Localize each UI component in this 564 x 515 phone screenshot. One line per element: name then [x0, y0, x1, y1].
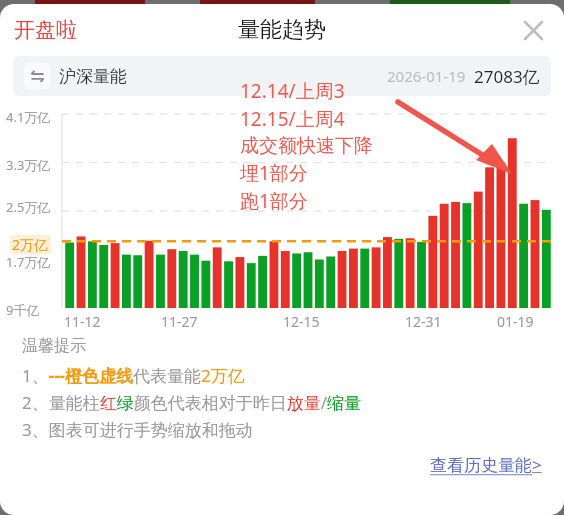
staticText: 11-27: [161, 312, 198, 331]
staticText: 2026-01-19: [387, 66, 466, 86]
staticText: 1、---橙色虚线代表量能2万亿: [22, 364, 245, 387]
staticText: 4.1万亿: [6, 108, 51, 126]
staticText: 3、图表可进行手势缩放和拖动: [22, 418, 253, 441]
staticText: 12-15: [283, 312, 320, 331]
staticText: 跑1部分: [240, 188, 308, 214]
staticText: 11-12: [64, 312, 101, 331]
button[interactable]: Close: [516, 13, 550, 47]
staticText: 埋1部分: [240, 160, 308, 186]
staticText: 量能趋势: [238, 16, 326, 44]
staticText: 2万亿: [12, 235, 49, 254]
staticText: 成交额快速下降: [240, 134, 373, 158]
staticText: 开盘啦: [14, 17, 77, 43]
button[interactable]: 查看历史量能>: [430, 451, 564, 478]
staticText: 2.5万亿: [6, 198, 51, 216]
staticText: 9千亿: [6, 301, 40, 319]
staticText: 沪深量能: [59, 66, 127, 87]
staticText: 温馨提示: [22, 336, 86, 356]
staticText: 27083亿: [474, 65, 540, 88]
staticText: 12-31: [405, 312, 442, 331]
staticText: 查看历史量能>: [430, 453, 542, 476]
staticText: 1.7万亿: [6, 253, 51, 271]
staticText: 2、量能柱红绿颜色代表相对于昨日放量/缩量: [22, 391, 362, 414]
staticText: 01-19: [497, 312, 534, 331]
staticText: 12.14/上周3: [240, 78, 345, 104]
staticText: 12.15/上周4: [240, 106, 345, 132]
button[interactable]: 沪深量能: [13, 56, 551, 96]
staticText: 3.3万亿: [6, 156, 51, 174]
